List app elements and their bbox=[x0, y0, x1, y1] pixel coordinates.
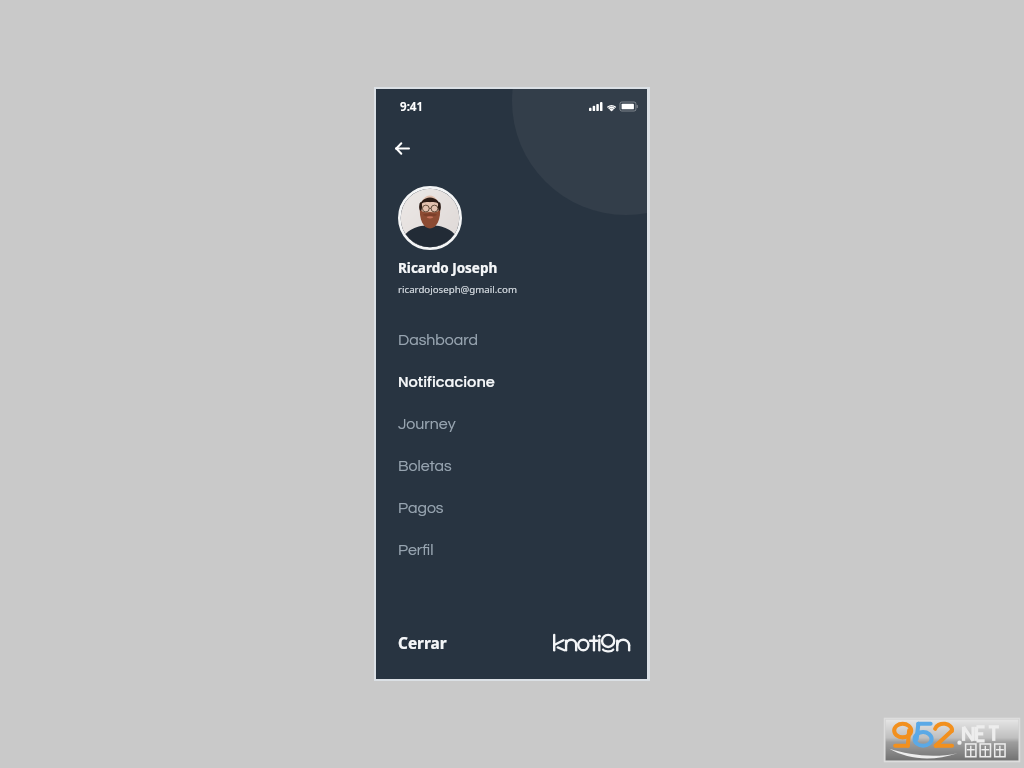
staticText: Perfil bbox=[398, 542, 434, 558]
staticText: Pagos bbox=[398, 500, 444, 516]
button[interactable]: Journey bbox=[376, 403, 647, 445]
button[interactable]: Back bbox=[384, 130, 420, 166]
button[interactable]: Cerrar bbox=[398, 630, 447, 656]
button[interactable]: Pagos bbox=[376, 487, 647, 529]
staticText: Boletas bbox=[398, 458, 452, 474]
button[interactable]: Notificacione bbox=[376, 361, 647, 403]
staticText: Cerrar bbox=[398, 633, 447, 654]
staticText: ricardojoseph@gmail.com bbox=[398, 283, 517, 296]
button[interactable]: Perfil bbox=[376, 529, 647, 571]
button[interactable]: Dashboard bbox=[376, 319, 647, 361]
staticText: 9:41 bbox=[400, 99, 424, 115]
button[interactable]: Boletas bbox=[376, 445, 647, 487]
staticText: Ricardo Joseph bbox=[398, 259, 498, 277]
staticText: Journey bbox=[398, 416, 456, 432]
staticText: Notificacione bbox=[398, 372, 495, 392]
staticText: Dashboard bbox=[398, 332, 478, 348]
